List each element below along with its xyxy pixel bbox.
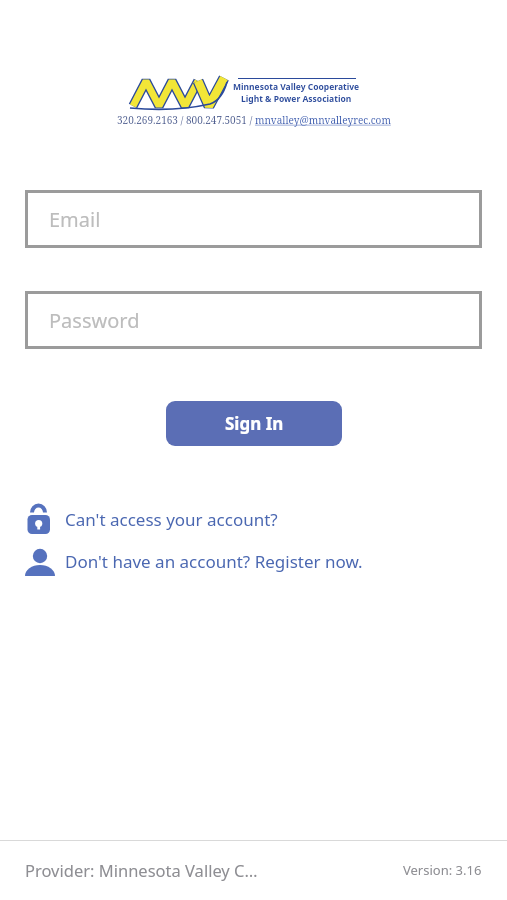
button[interactable]: Don't have an account? Register now. bbox=[25, 546, 363, 577]
staticText: 320.269.2163 / 800.247.5051 / mnvalley@m… bbox=[117, 113, 391, 127]
staticText: Password bbox=[49, 307, 140, 334]
button[interactable]: Email bbox=[25, 190, 482, 248]
staticText: Minnesota Valley Cooperative bbox=[233, 81, 360, 93]
staticText: Email bbox=[49, 206, 101, 233]
staticText: Version: 3.16 bbox=[403, 861, 482, 879]
button[interactable]: Can't access your account? bbox=[27, 504, 278, 535]
staticText: Sign In bbox=[225, 412, 284, 435]
button[interactable]: Sign In bbox=[166, 401, 342, 446]
button[interactable]: Password bbox=[25, 291, 482, 349]
staticText: Light & Power Association bbox=[241, 93, 352, 105]
staticText: Don't have an account? Register now. bbox=[65, 550, 363, 573]
staticText: Can't access your account? bbox=[65, 508, 278, 531]
staticText: Provider: Minnesota Valley C… bbox=[25, 859, 258, 881]
